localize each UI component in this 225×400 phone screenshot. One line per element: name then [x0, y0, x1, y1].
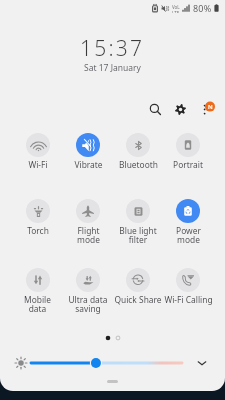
staticText: Bluetooth [119, 159, 158, 170]
button[interactable]: Search [145, 99, 165, 119]
button[interactable]: Flight mode [63, 199, 113, 245]
button[interactable]: Blue light filter [113, 199, 163, 245]
button[interactable]: Expand quick settings [192, 353, 212, 373]
staticText: Quick Share [114, 294, 162, 305]
staticText: Ultra data saving [68, 294, 108, 314]
button[interactable]: Settings [170, 99, 190, 119]
staticText: Wi-Fi [28, 159, 48, 170]
staticText: 80% [193, 2, 212, 14]
staticText: 15:37 [80, 34, 145, 63]
button[interactable]: Power mode [163, 199, 213, 245]
button[interactable]: Wi-Fi Calling [163, 268, 213, 305]
staticText: LTE [172, 10, 180, 13]
button[interactable]: Torch [12, 199, 63, 236]
button[interactable]: Bluetooth [113, 133, 163, 170]
staticText: Portrait [173, 159, 203, 170]
button[interactable]: Mobile data [12, 268, 63, 314]
staticText: Flight mode [77, 225, 100, 245]
staticText: Sat 17 January [84, 62, 141, 74]
button[interactable]: More options [196, 99, 216, 119]
staticText: Wi-Fi Calling [164, 294, 213, 305]
staticText: N [208, 103, 213, 111]
button[interactable]: Quick Share [113, 268, 163, 305]
staticText: Power mode [176, 225, 201, 245]
staticText: Mobile data [24, 294, 51, 314]
button[interactable]: Wi-Fi [12, 133, 63, 170]
staticText: VoL [172, 4, 180, 10]
button[interactable]: Vibrate [63, 133, 113, 170]
staticText: Vibrate [74, 159, 103, 170]
button[interactable]: Portrait [163, 133, 213, 170]
staticText: Blue light filter [119, 225, 157, 245]
button[interactable]: Ultra data saving [63, 268, 113, 314]
staticText: Torch [27, 225, 49, 236]
